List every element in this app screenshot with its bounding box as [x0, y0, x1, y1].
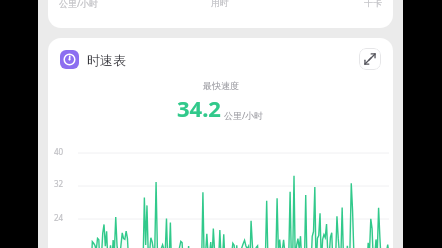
staticText: 用时 [166, 0, 274, 8]
staticText: 最快速度 [203, 80, 239, 91]
button[interactable]: 时速表 [60, 50, 126, 69]
staticText: 32 [54, 178, 64, 189]
staticText: 34.2 [177, 93, 221, 123]
staticText: 40 [54, 146, 64, 157]
staticText: 公里/小时 [224, 109, 264, 121]
staticText: 时速表 [87, 52, 126, 68]
staticText: 24 [54, 212, 64, 223]
button[interactable]: Expand chart [359, 48, 381, 70]
staticText: 千卡 [274, 0, 382, 8]
staticText: 公里/小时 [59, 0, 166, 9]
button[interactable]: 公里/小时 [48, 0, 393, 28]
